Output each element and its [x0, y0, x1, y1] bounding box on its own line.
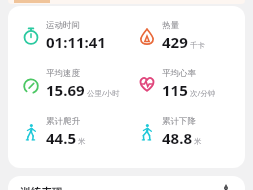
staticText: 累计爬升: [46, 116, 80, 127]
button[interactable]: 平均速度: [22, 68, 128, 100]
staticText: 热量: [162, 20, 179, 31]
button[interactable]: Info: [219, 186, 233, 190]
staticText: 累计下降: [162, 116, 196, 127]
staticText: 运动时间: [46, 20, 80, 31]
staticText: 429: [162, 32, 188, 52]
staticText: 平均心率: [162, 68, 196, 79]
button[interactable]: 运动时间: [8, 6, 245, 168]
staticText: 公里/小时: [87, 88, 120, 98]
staticText: 平均速度: [46, 68, 80, 79]
staticText: 米: [194, 137, 202, 146]
staticText: 米: [78, 137, 86, 146]
button[interactable]: 运动时间: [22, 20, 128, 52]
staticText: 次/分钟: [190, 88, 216, 98]
staticText: 48.8: [162, 128, 192, 148]
staticText: 训练表现: [20, 186, 62, 190]
staticText: 01:11:41: [46, 32, 106, 52]
button[interactable]: 平均心率: [138, 68, 245, 100]
button[interactable]: 累计爬升: [22, 116, 128, 148]
button[interactable]: 热量: [138, 20, 245, 52]
button[interactable]: 累计下降: [138, 116, 245, 148]
staticText: 44.5: [46, 128, 76, 148]
staticText: 15.69: [46, 80, 85, 100]
staticText: 千卡: [190, 41, 205, 50]
button[interactable]: 训练表现: [8, 176, 245, 190]
staticText: 115: [162, 80, 188, 100]
